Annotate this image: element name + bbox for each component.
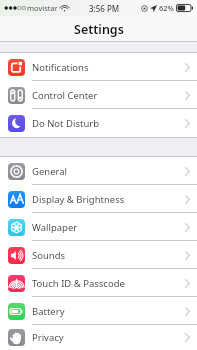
staticText: Privacy xyxy=(32,331,64,344)
staticText: Control Center xyxy=(32,89,98,102)
staticText: General xyxy=(32,165,68,178)
staticText: Touch ID & Passcode xyxy=(32,277,125,290)
staticText: 3:56 PM xyxy=(89,3,120,14)
button[interactable]: Display & Brightness xyxy=(0,185,197,213)
button[interactable]: Battery xyxy=(0,297,197,325)
button[interactable]: General xyxy=(0,157,197,185)
button[interactable]: Notifications xyxy=(0,53,197,81)
staticText: Battery xyxy=(32,305,65,318)
button[interactable]: Wallpaper xyxy=(0,213,197,241)
button[interactable]: Sounds xyxy=(0,241,197,269)
staticText: 62% xyxy=(159,3,174,13)
staticText: Notifications xyxy=(32,61,89,74)
staticText: Do Not Disturb xyxy=(32,117,100,130)
staticText: Display & Brightness xyxy=(32,193,125,206)
button[interactable]: Control Center xyxy=(0,81,197,109)
staticText: Wallpaper xyxy=(32,221,78,234)
staticText: movistar xyxy=(27,3,58,13)
button[interactable]: Touch ID & Passcode xyxy=(0,269,197,297)
button[interactable]: Privacy xyxy=(0,325,197,350)
button[interactable]: Do Not Disturb xyxy=(0,109,197,137)
staticText: Sounds xyxy=(32,249,66,262)
staticText: Settings xyxy=(74,21,124,38)
